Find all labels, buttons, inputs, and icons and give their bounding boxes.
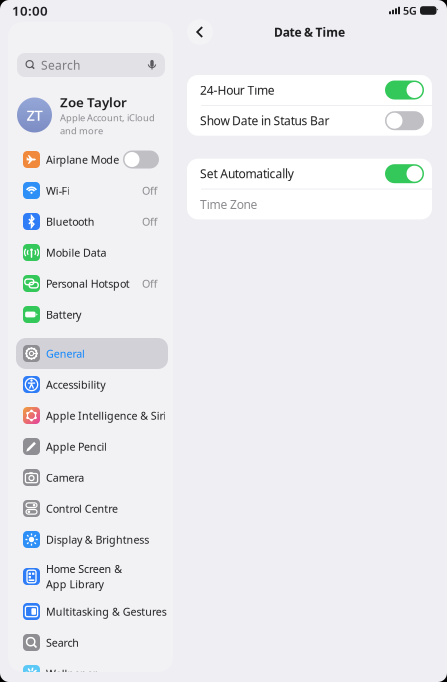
staticText: Time Zone bbox=[200, 196, 257, 212]
staticText: Zoe Taylor bbox=[60, 93, 127, 111]
staticText: Date & Time bbox=[274, 24, 345, 40]
button[interactable]: Personal Hotspot bbox=[16, 270, 164, 297]
button[interactable]: Home Screen & bbox=[16, 560, 164, 593]
button[interactable]: Battery bbox=[16, 301, 164, 328]
staticText: Accessibility bbox=[46, 377, 105, 392]
staticText: ZT bbox=[26, 105, 42, 125]
staticText: 10:00 bbox=[12, 2, 48, 19]
button[interactable]: Wallpaper bbox=[16, 660, 164, 682]
staticText: Multitasking & Gestures bbox=[46, 604, 167, 619]
staticText: Wi-Fi bbox=[46, 183, 70, 198]
button[interactable]: Multitasking & Gestures bbox=[16, 598, 164, 625]
staticText: Apple Account, iCloud bbox=[60, 111, 155, 124]
button[interactable]: Wi-Fi bbox=[16, 177, 164, 204]
button[interactable]: Search bbox=[17, 53, 165, 77]
button[interactable]: Accessibility bbox=[16, 371, 164, 398]
button[interactable]: Mobile Data bbox=[16, 239, 164, 266]
button[interactable]: Search bbox=[16, 629, 164, 656]
button[interactable]: Apple Pencil bbox=[16, 433, 164, 460]
staticText: Home Screen & bbox=[46, 562, 122, 576]
staticText: Camera bbox=[46, 470, 84, 485]
staticText: Show Date in Status Bar bbox=[200, 113, 330, 129]
staticText: and more bbox=[60, 124, 103, 137]
button[interactable]: Control Centre bbox=[16, 495, 164, 522]
staticText: Set Automatically bbox=[200, 166, 294, 182]
staticText: Personal Hotspot bbox=[46, 276, 130, 291]
staticText: Off bbox=[142, 276, 157, 291]
staticText: Wallpaper bbox=[46, 666, 97, 681]
staticText: Search bbox=[41, 57, 80, 73]
staticText: Display & Brightness bbox=[46, 532, 149, 547]
staticText: Off bbox=[142, 214, 157, 229]
staticText: App Library bbox=[46, 577, 103, 591]
staticText: General bbox=[46, 346, 85, 361]
button[interactable]: Apple Intelligence & Siri bbox=[16, 402, 164, 429]
button[interactable]: Bluetooth bbox=[16, 208, 164, 235]
button[interactable]: Camera bbox=[16, 464, 164, 491]
button[interactable]: General bbox=[16, 340, 164, 367]
staticText: Apple Intelligence & Siri bbox=[46, 408, 166, 423]
staticText: Mobile Data bbox=[46, 245, 106, 260]
staticText: Airplane Mode bbox=[46, 152, 119, 167]
staticText: Bluetooth bbox=[46, 214, 95, 229]
staticText: Control Centre bbox=[46, 501, 118, 516]
button[interactable]: Display & Brightness bbox=[16, 526, 164, 553]
staticText: 24-Hour Time bbox=[200, 82, 275, 98]
button[interactable]: Airplane Mode bbox=[16, 146, 164, 173]
staticText: Off bbox=[142, 183, 157, 198]
button[interactable]: Back bbox=[187, 19, 213, 45]
staticText: Apple Pencil bbox=[46, 439, 107, 454]
staticText: Battery bbox=[46, 307, 81, 322]
button[interactable]: ZT bbox=[17, 95, 165, 135]
staticText: 5G bbox=[403, 3, 417, 18]
staticText: Search bbox=[46, 635, 79, 650]
